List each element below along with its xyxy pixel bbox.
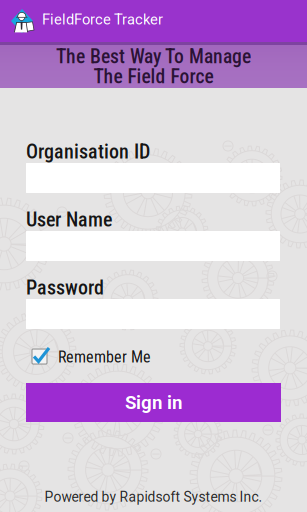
button[interactable]: Sign in	[26, 383, 281, 422]
staticText: FieldForce Tracker	[42, 11, 163, 28]
staticText: The Best Way To Manage	[56, 45, 251, 68]
staticText: Password	[26, 276, 104, 299]
staticText: Powered by Rapidsoft Systems Inc.	[44, 489, 262, 505]
staticText: User Name	[26, 208, 112, 231]
staticText: The Field Force	[93, 65, 213, 88]
staticText: Sign in	[125, 392, 182, 413]
button[interactable]: Remember Me	[32, 346, 192, 368]
staticText: Organisation ID	[26, 140, 150, 163]
staticText: Remember Me	[58, 348, 151, 366]
